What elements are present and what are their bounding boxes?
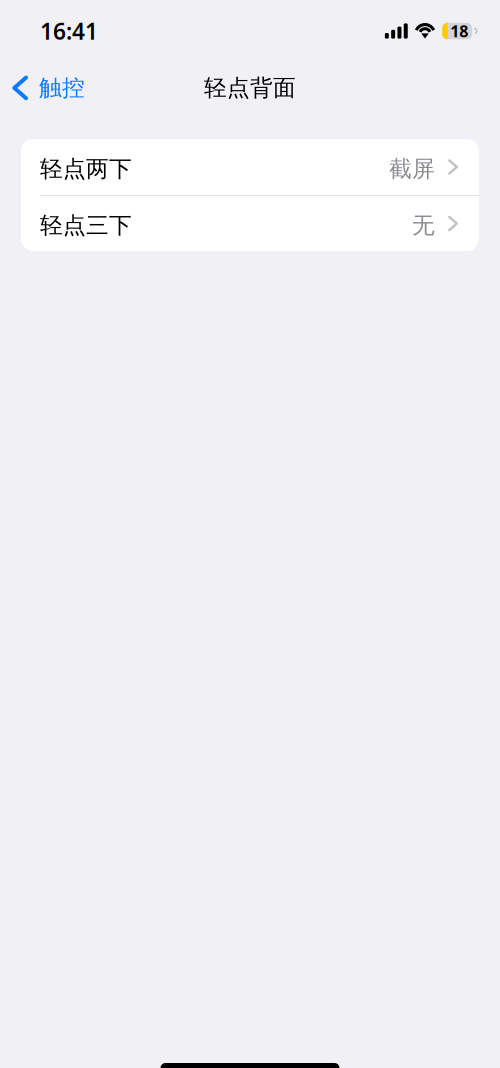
staticText: 轻点三下 <box>40 212 132 239</box>
staticText: 16:41 <box>40 16 98 46</box>
staticText: 截屏 <box>389 155 435 183</box>
button[interactable]: 轻点三下 <box>21 196 479 251</box>
staticText: 18 <box>450 20 468 42</box>
button[interactable]: 轻点两下 <box>21 139 479 195</box>
staticText: 无 <box>412 212 435 239</box>
button[interactable]: 触控 <box>0 66 95 110</box>
staticText: 轻点两下 <box>40 155 132 183</box>
staticText: 触控 <box>39 74 85 102</box>
staticText: 轻点背面 <box>204 74 296 102</box>
